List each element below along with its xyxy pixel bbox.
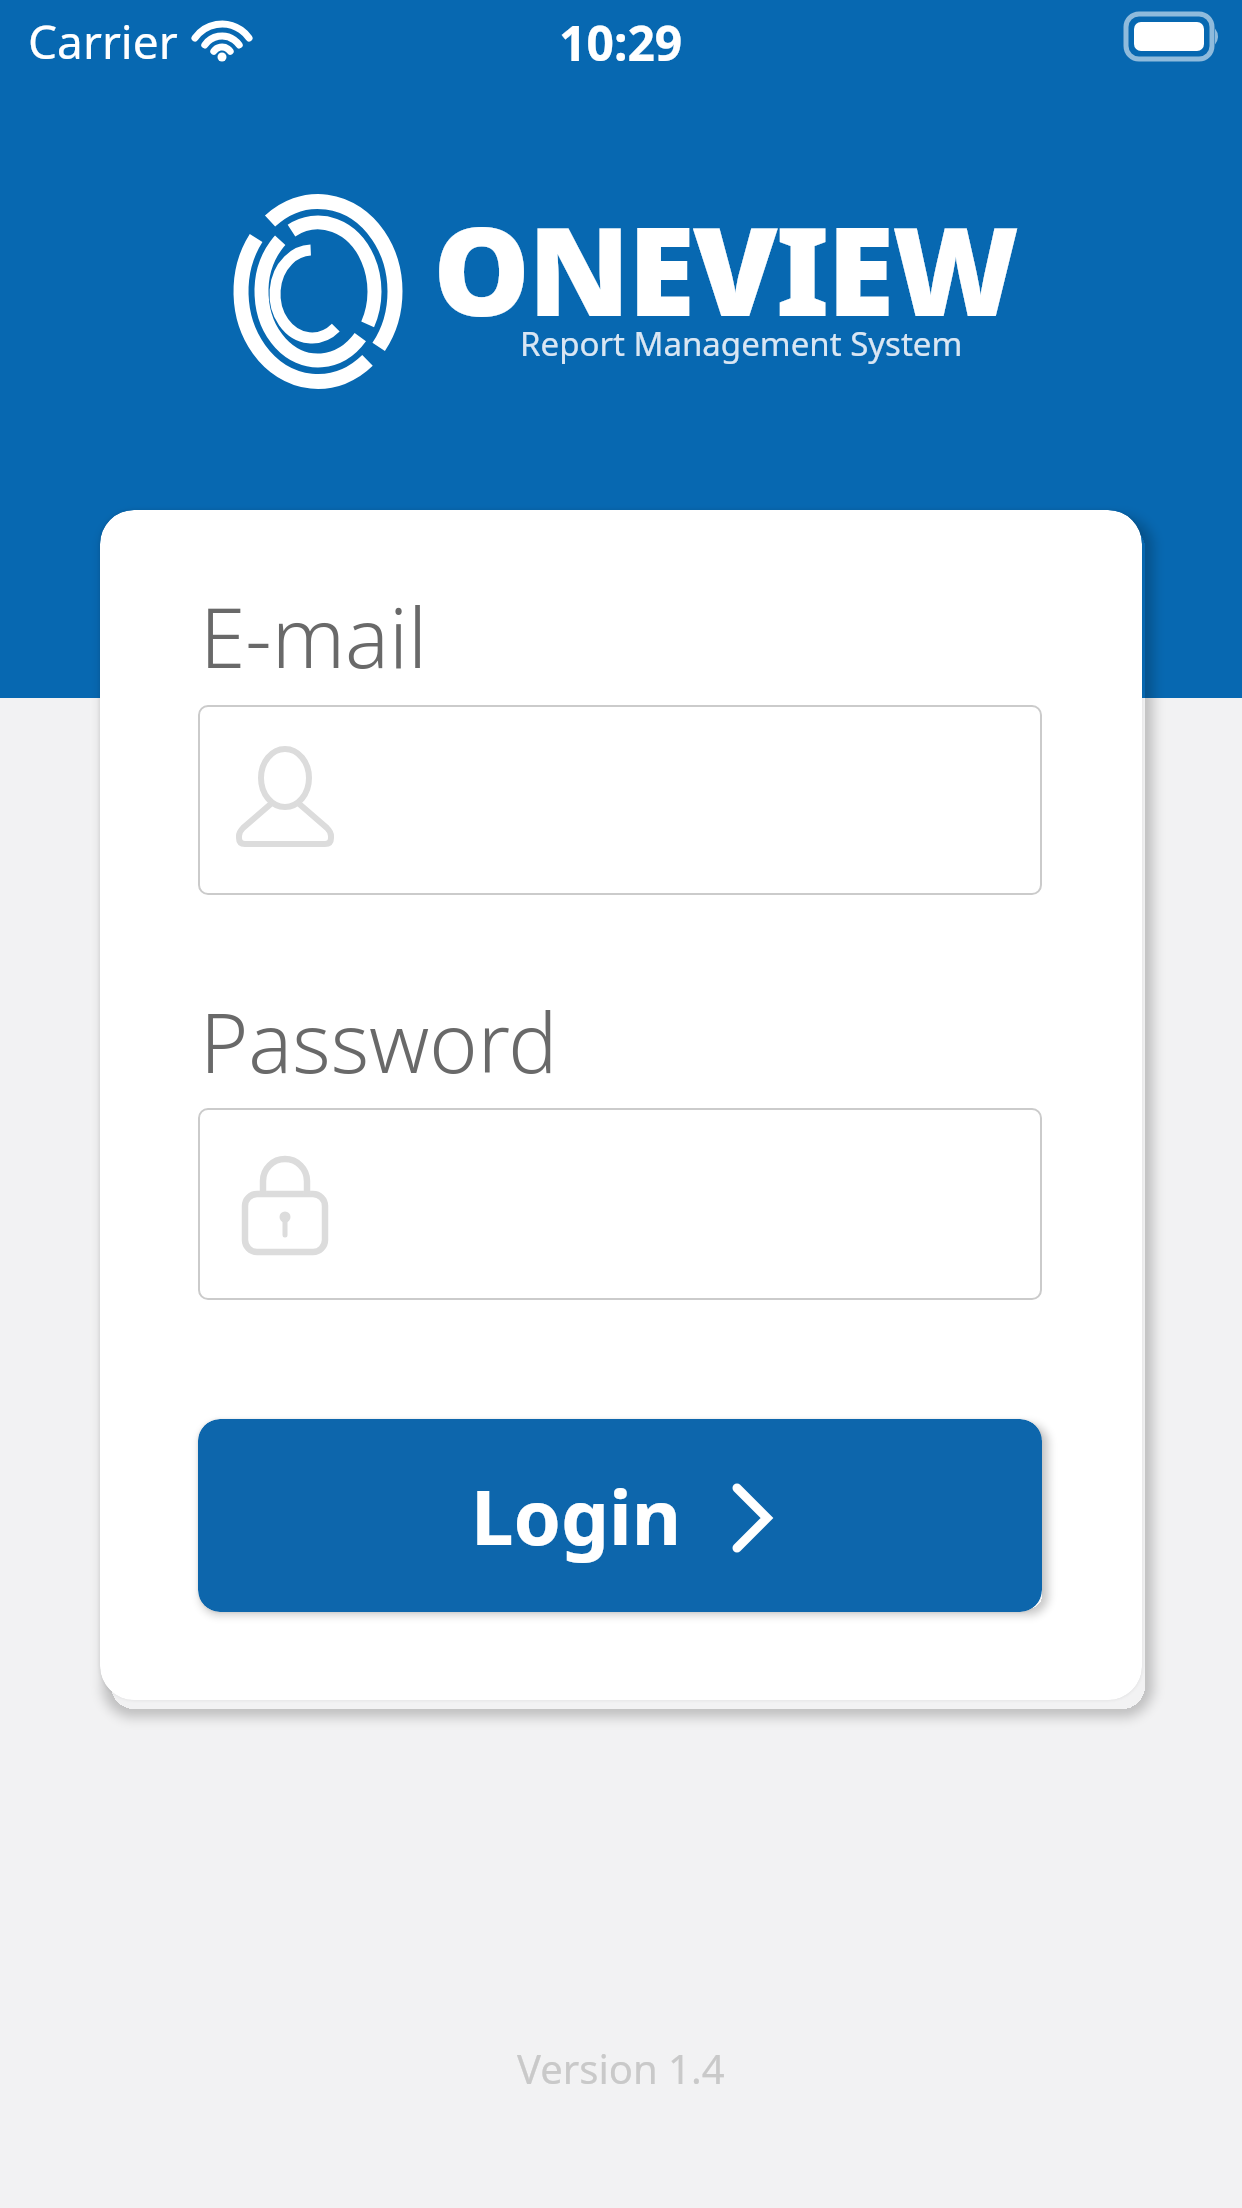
staticText: ONEVIEW — [433, 186, 1018, 352]
button[interactable] — [198, 705, 1042, 895]
staticText: Report Management System — [520, 321, 963, 366]
staticText: Password — [200, 985, 558, 1097]
staticText: Carrier — [28, 10, 178, 73]
staticText: Version 1.4 — [517, 2041, 725, 2095]
button[interactable] — [198, 1108, 1042, 1300]
staticText: E-mail — [200, 580, 427, 692]
staticText: Login — [471, 1464, 682, 1568]
staticText: 10:29 — [559, 10, 683, 75]
button[interactable]: Login — [198, 1419, 1042, 1612]
